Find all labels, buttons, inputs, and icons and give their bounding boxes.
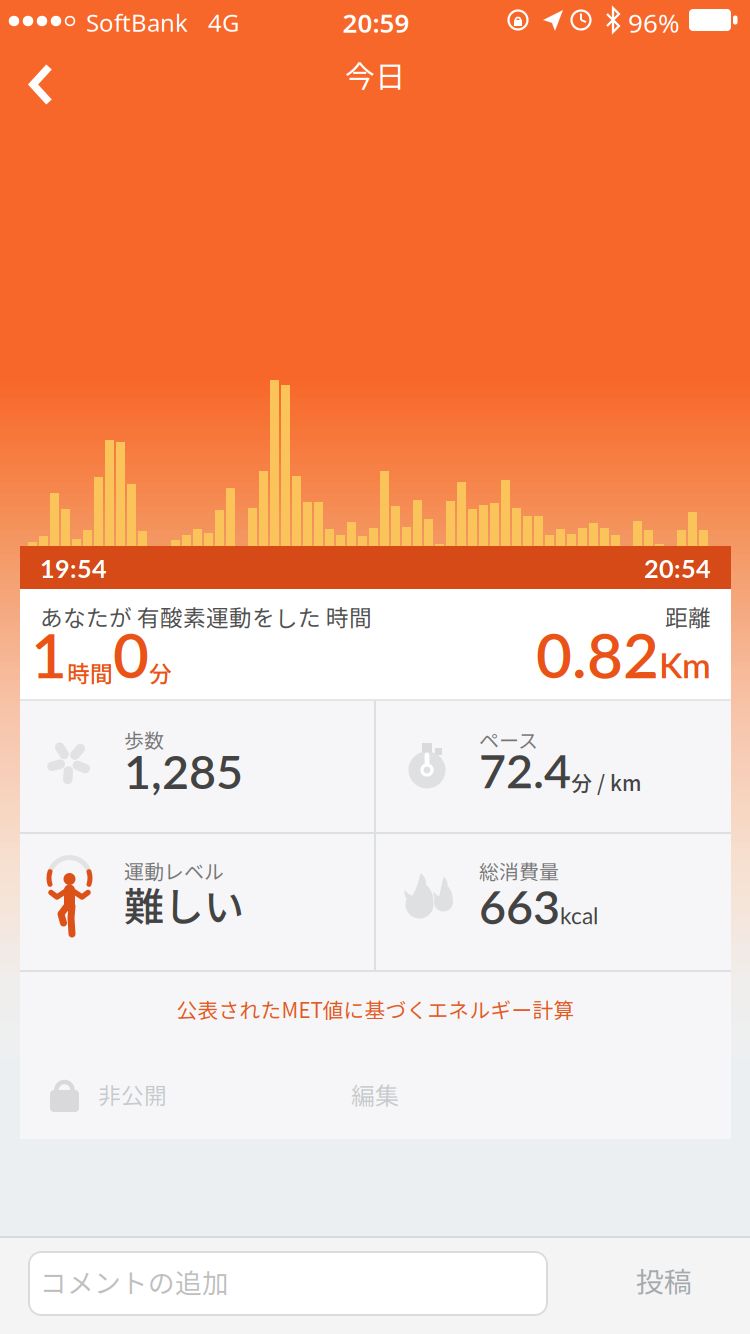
staticText: あなたが 有酸素運動をした 時間 <box>40 600 372 633</box>
staticText: コメントの追加 <box>40 1262 229 1301</box>
button[interactable]: 投稿 <box>636 1260 692 1300</box>
button[interactable]: Back <box>22 62 66 107</box>
staticText: 非公開 <box>98 1078 167 1110</box>
staticText: SoftBank <box>86 6 188 39</box>
staticText: 0.82Km <box>536 618 711 690</box>
staticText: 1時間0分 <box>31 618 172 690</box>
staticText: ペース <box>479 725 538 754</box>
staticText: 20:59 <box>342 5 409 40</box>
staticText: 総消費量 <box>479 856 559 885</box>
staticText: 19:54 <box>40 553 107 583</box>
staticText: 72.4分 / km <box>479 743 641 798</box>
staticText: 96% <box>628 5 680 40</box>
button[interactable]: 非公開 <box>48 1074 167 1114</box>
staticText: 今日 <box>345 53 405 96</box>
staticText: 歩数 <box>124 725 164 754</box>
staticText: 1,285 <box>124 743 243 799</box>
staticText: 編集 <box>351 1077 399 1112</box>
staticText: 663kcal <box>479 879 598 934</box>
staticText: 難しい <box>124 875 244 933</box>
staticText: 運動レベル <box>124 856 224 885</box>
staticText: 距離 <box>665 600 711 633</box>
staticText: 投稿 <box>636 1260 692 1300</box>
staticText: 公表されたMET値に基づくエネルギー計算 <box>176 994 574 1024</box>
staticText: 20:54 <box>644 553 711 583</box>
button[interactable]: 編集 <box>351 1077 399 1112</box>
staticText: 4G <box>208 6 239 39</box>
button[interactable]: コメントの追加 <box>28 1251 548 1316</box>
